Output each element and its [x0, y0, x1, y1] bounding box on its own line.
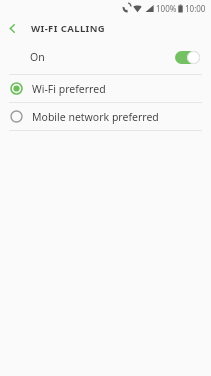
button[interactable]: On [0, 40, 211, 74]
button[interactable]: Wi-Fi preferred [0, 75, 211, 102]
other: Wi-Fi calling switch, on [175, 51, 200, 64]
staticText: 10:00 [185, 3, 206, 14]
staticText: Wi-Fi preferred [32, 82, 106, 96]
staticText: 100% [156, 3, 177, 14]
staticText: On [30, 50, 175, 64]
button[interactable]: Mobile network preferred [0, 103, 211, 130]
staticText: Mobile network preferred [32, 110, 159, 124]
staticText: WI-FI CALLING [31, 22, 106, 35]
button[interactable]: Navigate up [0, 16, 24, 40]
